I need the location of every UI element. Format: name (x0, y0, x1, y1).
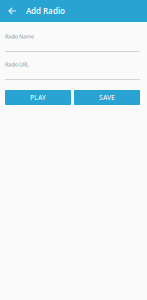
staticText: Add Radio (26, 6, 65, 16)
button[interactable]: SAVE (74, 90, 140, 105)
button[interactable]: Radio URL (5, 62, 140, 80)
button[interactable]: Back (2, 0, 22, 22)
staticText: SAVE (99, 93, 115, 102)
staticText: PLAY (30, 93, 46, 102)
staticText: Radio Name (5, 33, 34, 40)
button[interactable]: PLAY (5, 90, 71, 105)
button[interactable]: Radio Name (5, 34, 140, 52)
staticText: Radio URL (5, 61, 29, 68)
